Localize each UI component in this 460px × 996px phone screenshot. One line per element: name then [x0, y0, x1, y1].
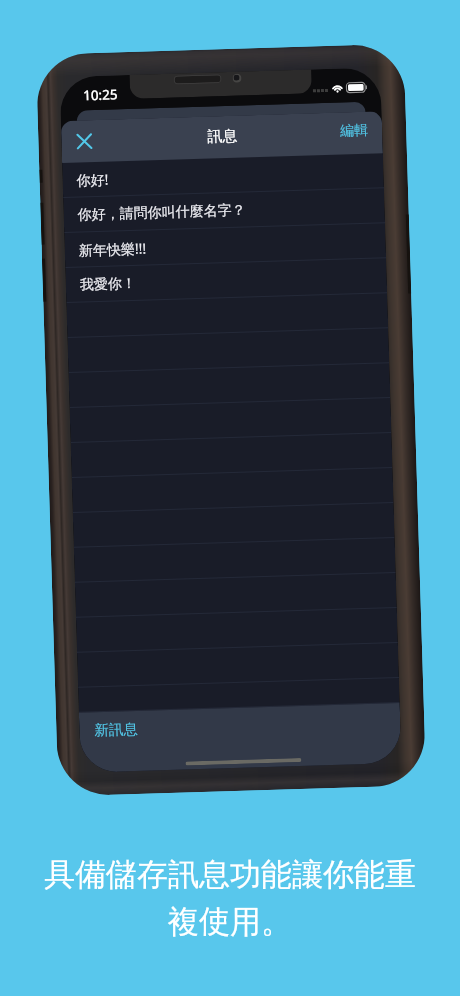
- button[interactable]: 新年快樂!!!: [64, 223, 386, 268]
- button[interactable]: 編輯: [326, 113, 383, 149]
- staticText: 我愛你！: [79, 275, 136, 294]
- button[interactable]: 我愛你！: [65, 258, 387, 303]
- button[interactable]: Close: [70, 127, 99, 156]
- button[interactable]: 你好!: [62, 153, 384, 198]
- staticText: 訊息: [207, 127, 238, 147]
- button[interactable]: 你好，請問你叫什麼名字？: [63, 188, 385, 233]
- staticText: 新訊息: [94, 720, 139, 739]
- staticText: 新年快樂!!!: [78, 238, 147, 260]
- staticText: 具備儲存訊息功能讓你能重 複使用。: [0, 855, 460, 941]
- staticText: 10:25: [83, 85, 118, 104]
- staticText: 你好!: [76, 170, 109, 190]
- staticText: 你好，請問你叫什麼名字？: [77, 201, 246, 225]
- button[interactable]: 新訊息: [79, 703, 402, 773]
- staticText: 編輯: [340, 122, 368, 140]
- button[interactable]: [78, 678, 400, 713]
